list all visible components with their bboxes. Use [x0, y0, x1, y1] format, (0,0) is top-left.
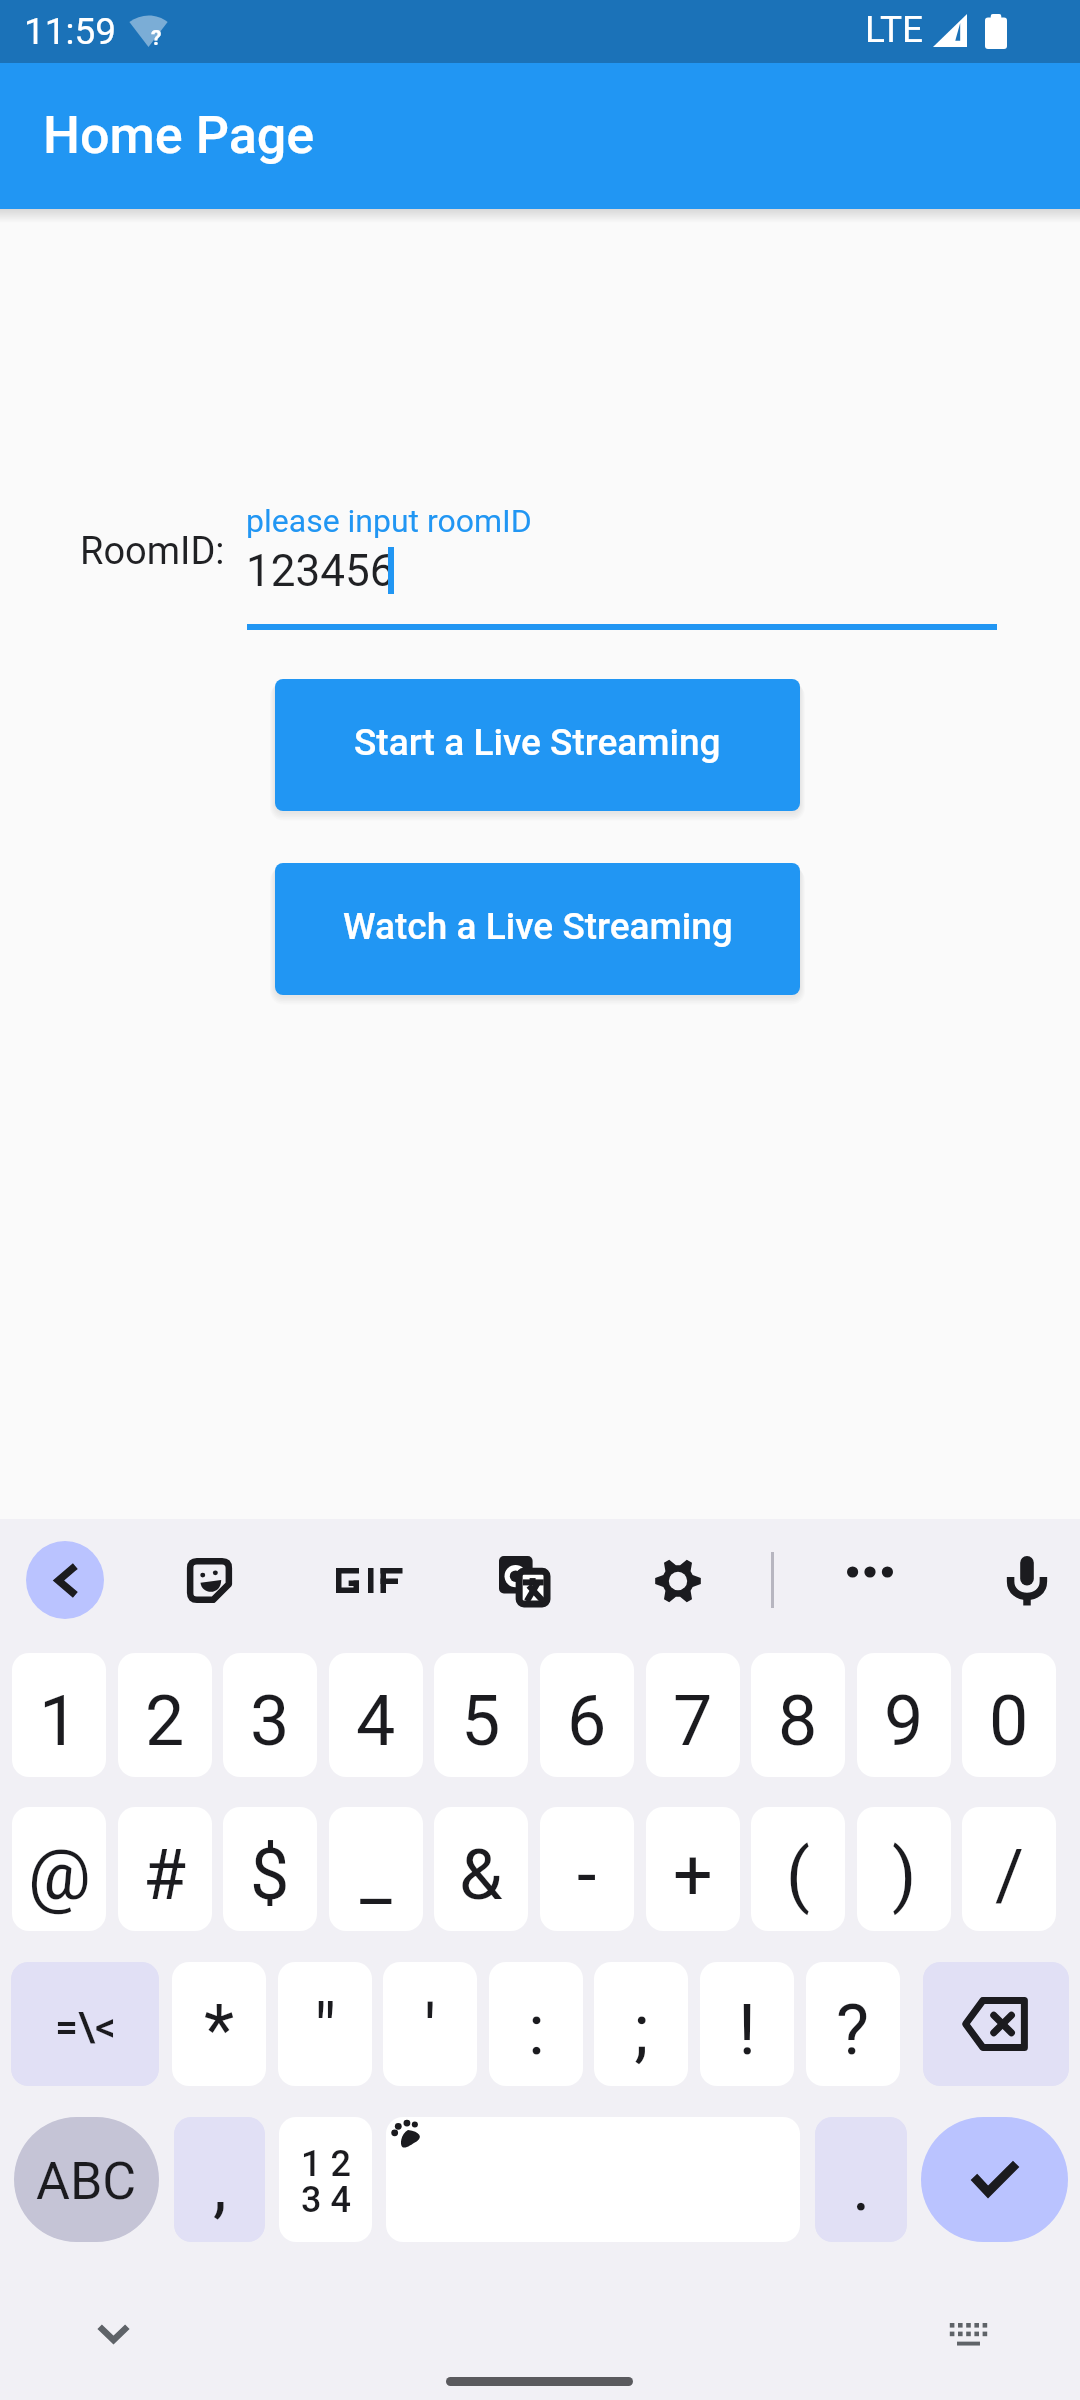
- button[interactable]: =\<: [11, 1962, 159, 2086]
- button[interactable]: ': [383, 1962, 477, 2086]
- staticText: #: [143, 1834, 187, 1916]
- button[interactable]: 8: [751, 1653, 845, 1777]
- staticText: 11:59: [24, 10, 117, 53]
- button[interactable]: Hide keyboard: [78, 2299, 148, 2369]
- button[interactable]: 5: [434, 1653, 528, 1777]
- button[interactable]: 2: [118, 1653, 212, 1777]
- staticText: Start a Live Streaming: [354, 721, 721, 764]
- button[interactable]: ;: [594, 1962, 688, 2086]
- staticText: !: [738, 1989, 757, 2071]
- staticText: 4: [356, 1680, 396, 1762]
- staticText: ?: [836, 1989, 870, 2071]
- staticText: 5: [461, 1680, 501, 1762]
- staticText: please input roomID: [246, 502, 532, 540]
- button[interactable]: Start a Live Streaming: [275, 679, 800, 811]
- button[interactable]: Watch a Live Streaming: [275, 863, 800, 995]
- button[interactable]: ?: [806, 1962, 900, 2086]
- button[interactable]: #: [118, 1807, 212, 1931]
- staticText: @: [28, 1834, 91, 1916]
- button[interactable]: 7: [646, 1653, 740, 1777]
- button[interactable]: More options: [834, 1536, 906, 1608]
- button[interactable]: +: [646, 1807, 740, 1931]
- staticText: *: [204, 1989, 235, 2071]
- staticText: RoomID:: [80, 529, 225, 574]
- staticText: (: [786, 1834, 810, 1916]
- button[interactable]: Settings: [642, 1545, 714, 1617]
- button[interactable]: GIF: [329, 1544, 401, 1616]
- staticText: Home Page: [43, 105, 315, 166]
- button[interactable]: Enter: [921, 2117, 1068, 2242]
- button[interactable]: ": [278, 1962, 372, 2086]
- button[interactable]: 1 2 3 4: [279, 2117, 372, 2242]
- button[interactable]: -: [540, 1807, 634, 1931]
- staticText: 7: [673, 1680, 713, 1762]
- button[interactable]: !: [700, 1962, 794, 2086]
- button[interactable]: $: [223, 1807, 317, 1931]
- staticText: ;: [634, 1989, 649, 2071]
- button[interactable]: Stickers: [173, 1544, 245, 1616]
- staticText: ': [424, 1989, 437, 2071]
- staticText: 1 2 3 4: [301, 2143, 351, 2220]
- staticText: 9: [884, 1680, 924, 1762]
- staticText: 1: [39, 1680, 79, 1762]
- button[interactable]: 9: [857, 1653, 951, 1777]
- staticText: 6: [567, 1680, 607, 1762]
- button[interactable]: 6: [540, 1653, 634, 1777]
- staticText: Watch a Live Streaming: [343, 905, 733, 948]
- button[interactable]: ,: [174, 2117, 265, 2242]
- button[interactable]: Backspace: [923, 1962, 1069, 2086]
- button[interactable]: Voice input: [991, 1544, 1063, 1616]
- button[interactable]: &: [434, 1807, 528, 1931]
- button[interactable]: ): [857, 1807, 951, 1931]
- button[interactable]: :: [489, 1962, 583, 2086]
- button[interactable]: 0: [962, 1653, 1056, 1777]
- staticText: 3: [250, 1680, 290, 1762]
- button[interactable]: _: [329, 1807, 423, 1931]
- staticText: 0: [989, 1680, 1029, 1762]
- button[interactable]: Switch keyboard: [933, 2299, 1003, 2369]
- button[interactable]: Translate: [487, 1544, 559, 1616]
- staticText: :: [528, 1989, 545, 2071]
- staticText: 8: [778, 1680, 818, 1762]
- button[interactable]: Space: [386, 2117, 800, 2242]
- staticText: ,: [213, 2145, 227, 2227]
- staticText: /: [995, 1834, 1024, 1916]
- button[interactable]: /: [962, 1807, 1056, 1931]
- button[interactable]: Back: [26, 1541, 104, 1619]
- staticText: $: [250, 1834, 290, 1916]
- staticText: +: [673, 1834, 713, 1916]
- staticText: ": [314, 1989, 337, 2071]
- button[interactable]: @: [12, 1807, 106, 1931]
- button[interactable]: ABC: [14, 2117, 159, 2242]
- staticText: ): [892, 1834, 917, 1916]
- staticText: &: [459, 1834, 503, 1916]
- staticText: 123456: [246, 545, 395, 597]
- staticText: 2: [145, 1680, 185, 1762]
- staticText: _: [360, 1834, 392, 1916]
- button[interactable]: 3: [223, 1653, 317, 1777]
- button[interactable]: 1: [12, 1653, 106, 1777]
- button[interactable]: .: [815, 2117, 907, 2242]
- staticText: ?: [151, 26, 162, 51]
- staticText: .: [852, 2145, 871, 2227]
- staticText: ABC: [36, 2151, 137, 2212]
- staticText: LTE: [865, 8, 924, 51]
- staticText: -: [577, 1834, 597, 1916]
- button[interactable]: 4: [329, 1653, 423, 1777]
- staticText: =\<: [55, 2003, 116, 2051]
- button[interactable]: (: [751, 1807, 845, 1931]
- button[interactable]: *: [172, 1962, 266, 2086]
